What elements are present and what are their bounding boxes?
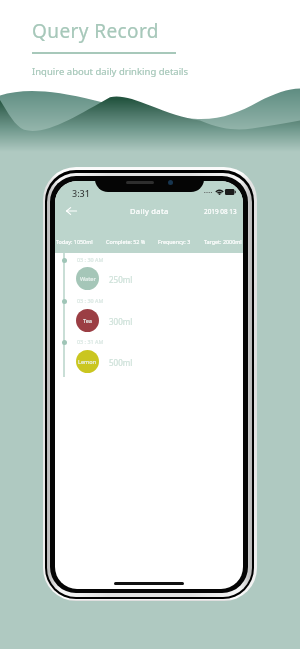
staticText: 3:31 bbox=[72, 187, 90, 199]
staticText: 03 : 31 AM bbox=[77, 338, 104, 345]
staticText: Lemon bbox=[78, 358, 97, 366]
button[interactable]: 03 : 30 AM bbox=[55, 289, 243, 330]
staticText: Complete: 52 % bbox=[106, 238, 146, 245]
staticText: Tea bbox=[83, 317, 93, 325]
staticText: 250ml bbox=[109, 274, 133, 285]
staticText: Frequency: 3 bbox=[158, 238, 191, 245]
staticText: Daily data bbox=[130, 206, 169, 216]
staticText: 03 : 30 AM bbox=[77, 256, 104, 263]
button[interactable]: Back bbox=[62, 202, 80, 219]
staticText: 03 : 30 AM bbox=[77, 297, 104, 304]
staticText: Query Record bbox=[32, 18, 159, 44]
staticText: 500ml bbox=[109, 357, 133, 368]
staticText: Today: 1050ml bbox=[56, 238, 93, 245]
staticText: Target: 2000ml bbox=[204, 238, 242, 245]
button[interactable]: 03 : 30 AM bbox=[55, 248, 243, 289]
staticText: Water bbox=[80, 275, 96, 283]
staticText: 2019 08 13 bbox=[204, 207, 237, 216]
staticText: 300ml bbox=[109, 316, 133, 327]
staticText: Inquire about daily drinking details bbox=[32, 65, 189, 78]
button[interactable]: 03 : 31 AM bbox=[55, 330, 243, 371]
